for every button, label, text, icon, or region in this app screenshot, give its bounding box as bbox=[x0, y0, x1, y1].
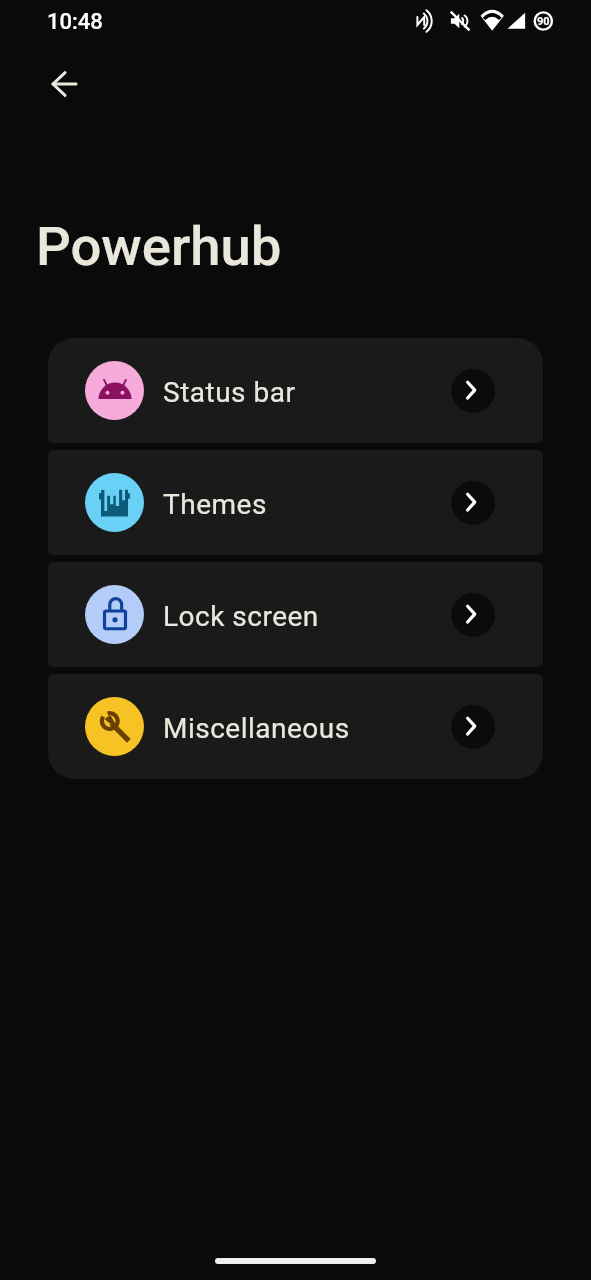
staticText: Themes bbox=[163, 488, 267, 521]
button[interactable]: Status bar bbox=[48, 338, 543, 443]
staticText: Lock screen bbox=[163, 600, 319, 633]
staticText: Status bar bbox=[163, 376, 296, 409]
button[interactable]: Themes bbox=[48, 450, 543, 555]
staticText: Miscellaneous bbox=[163, 712, 350, 745]
staticText: 90 bbox=[537, 15, 550, 28]
button[interactable]: Miscellaneous bbox=[48, 674, 543, 779]
staticText: 10:48 bbox=[47, 9, 103, 35]
button[interactable]: Lock screen bbox=[48, 562, 543, 667]
staticText: Powerhub bbox=[36, 214, 282, 278]
button[interactable]: Back bbox=[30, 51, 96, 117]
